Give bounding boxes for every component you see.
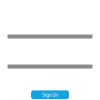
staticText: Sign In — [42, 91, 58, 98]
button[interactable] — [7, 34, 92, 38]
button[interactable]: Sign In — [31, 90, 69, 99]
button[interactable] — [7, 64, 92, 68]
